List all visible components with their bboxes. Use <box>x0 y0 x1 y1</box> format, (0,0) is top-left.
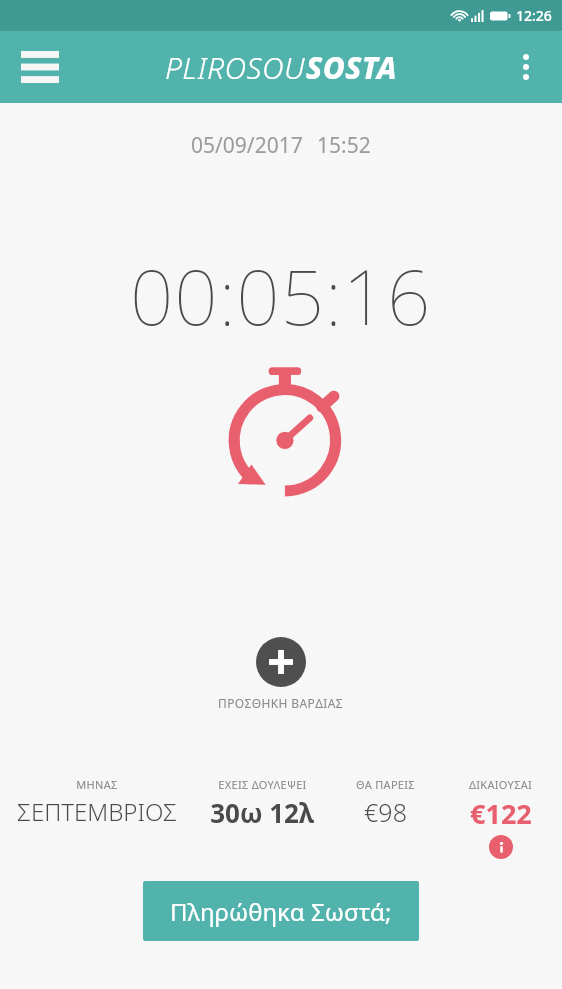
staticText: Πληρώθηκα Σωστά; <box>170 895 392 928</box>
button[interactable]: ΠΡΟΣΘΗΚΗ ΒΑΡΔΙΑΣ <box>200 633 362 715</box>
staticText: ΜΗΝΑΣ <box>76 777 118 792</box>
button[interactable]: Πληρώθηκα Σωστά; <box>143 881 419 941</box>
staticText: 05/09/2017 <box>191 131 303 160</box>
staticText: €98 <box>364 795 407 829</box>
staticText: ΔΙΚΑΙΟΥΣΑΙ <box>469 777 533 792</box>
staticText: €122 <box>470 795 532 832</box>
staticText: ΠΡΟΣΘΗΚΗ ΒΑΡΔΙΑΣ <box>218 695 344 711</box>
button[interactable]: Info <box>489 835 513 859</box>
button[interactable]: More options <box>502 43 550 91</box>
staticText: 30ω 12λ <box>210 795 314 830</box>
staticText: 12:26 <box>516 6 552 25</box>
staticText: ΕΧΕΙΣ ΔΟΥΛΕΨΕΙ <box>218 777 307 792</box>
button[interactable]: Menu <box>14 41 66 93</box>
staticText: PLIROSOU <box>165 47 306 88</box>
staticText: 15:52 <box>317 131 371 160</box>
staticText: SOSTA <box>306 47 398 88</box>
staticText: ΣΕΠΤΕΜΒΡΙΟΣ <box>17 795 177 828</box>
staticText: 00:05:16 <box>130 244 432 348</box>
staticText: ΘΑ ΠΑΡΕΙΣ <box>356 777 415 792</box>
